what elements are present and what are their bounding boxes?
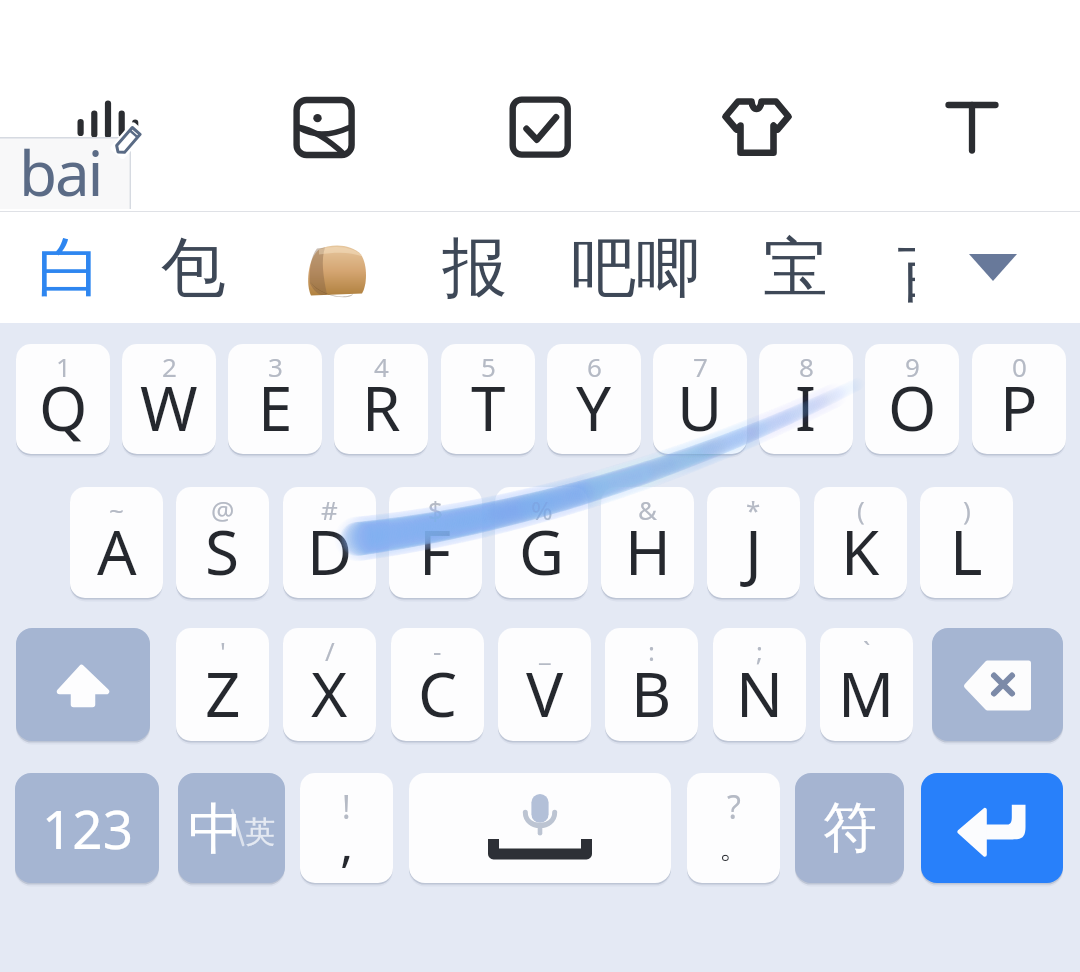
button[interactable]: _ xyxy=(498,628,591,741)
button[interactable]: ( xyxy=(814,487,907,598)
staticText: 宝 xyxy=(763,227,828,309)
staticText: T xyxy=(471,365,506,449)
staticText: Y xyxy=(576,365,612,449)
staticText: M xyxy=(838,651,895,735)
staticText: 包 xyxy=(161,227,226,309)
staticText: * xyxy=(746,492,761,527)
button[interactable]: 吧唧 xyxy=(551,213,721,322)
button[interactable]: 4 xyxy=(334,344,428,454)
staticText: U xyxy=(677,365,723,449)
button[interactable]: 0 xyxy=(972,344,1066,454)
button[interactable]: ' xyxy=(176,628,269,741)
staticText: Q xyxy=(39,365,88,449)
button[interactable]: # xyxy=(283,487,376,598)
staticText: ` xyxy=(863,633,871,668)
staticText: H xyxy=(625,509,671,593)
staticText: N xyxy=(736,651,784,735)
button[interactable]: 9 xyxy=(865,344,959,454)
staticText: Z xyxy=(205,651,241,735)
staticText: L xyxy=(950,509,983,593)
staticText: B xyxy=(631,651,672,735)
staticText: ~ xyxy=(109,492,124,527)
button[interactable]: 3 xyxy=(228,344,322,454)
staticText: ( xyxy=(857,492,865,527)
staticText: 6 xyxy=(587,349,602,384)
button[interactable]: - xyxy=(391,628,484,741)
staticText: 报 xyxy=(442,227,507,309)
button[interactable]: 白 xyxy=(17,213,121,322)
button[interactable]: % xyxy=(495,487,588,598)
button[interactable]: 2 xyxy=(122,344,216,454)
button[interactable]: 7 xyxy=(653,344,747,454)
button[interactable]: / xyxy=(283,628,376,741)
staticText: P xyxy=(1000,365,1038,449)
staticText: I xyxy=(795,365,817,449)
staticText: D xyxy=(307,509,353,593)
button[interactable]: $ xyxy=(389,487,482,598)
button[interactable]: Shift xyxy=(16,628,150,741)
button[interactable]: ` xyxy=(820,628,913,741)
staticText: 3 xyxy=(268,349,283,384)
staticText: 白 xyxy=(37,227,102,309)
button[interactable]: 1 xyxy=(16,344,110,454)
staticText: $ xyxy=(428,492,443,527)
staticText: O xyxy=(888,365,937,449)
button[interactable]: 符 xyxy=(795,773,904,883)
staticText: 7 xyxy=(693,349,708,384)
button[interactable]: 中 xyxy=(178,773,285,883)
button[interactable]: ~ xyxy=(70,487,163,598)
button[interactable]: Backspace xyxy=(932,628,1063,741)
button[interactable]: 5 xyxy=(441,344,535,454)
button[interactable]: 宝 xyxy=(743,213,847,322)
staticText: : xyxy=(648,633,655,668)
staticText: 0 xyxy=(1012,349,1027,384)
staticText: 9 xyxy=(905,349,920,384)
staticText: % xyxy=(531,492,553,527)
staticText: , xyxy=(340,809,354,877)
staticText: V xyxy=(526,651,564,735)
staticText: # xyxy=(321,492,338,527)
button[interactable]: * xyxy=(707,487,800,598)
staticText: ' xyxy=(220,633,226,668)
button[interactable]: & xyxy=(601,487,694,598)
button[interactable]: Emoji candidate xyxy=(280,213,392,322)
staticText: ? xyxy=(727,785,741,829)
staticText: R xyxy=(362,365,401,449)
staticText: _ xyxy=(539,633,551,668)
staticText: @ xyxy=(211,492,235,527)
staticText: G xyxy=(519,509,565,593)
button[interactable]: 包 xyxy=(141,213,245,322)
button[interactable]: 百 xyxy=(898,213,915,322)
button[interactable]: Space xyxy=(409,773,671,883)
staticText: 2 xyxy=(162,349,177,384)
button[interactable]: 报 xyxy=(422,213,526,322)
staticText: 5 xyxy=(481,349,496,384)
staticText: A xyxy=(97,509,137,593)
button[interactable]: @ xyxy=(176,487,269,598)
button[interactable]: Select xyxy=(480,67,600,187)
staticText: X xyxy=(311,651,348,735)
button[interactable]: : xyxy=(605,628,698,741)
button[interactable]: ) xyxy=(920,487,1013,598)
button[interactable]: Handwriting xyxy=(48,60,168,180)
button[interactable]: ! xyxy=(300,773,393,883)
button[interactable]: Enter xyxy=(921,773,1063,883)
staticText: E xyxy=(258,365,293,449)
staticText: 4 xyxy=(374,349,389,384)
staticText: & xyxy=(638,492,658,527)
staticText: 英 xyxy=(245,813,275,851)
staticText: ! xyxy=(342,785,351,829)
staticText: K xyxy=(841,509,880,593)
staticText: ; xyxy=(756,633,763,668)
staticText: 吧唧 xyxy=(571,227,701,309)
button[interactable]: ? xyxy=(687,773,780,883)
button[interactable]: 6 xyxy=(547,344,641,454)
button[interactable]: 8 xyxy=(759,344,853,454)
button[interactable]: Text style xyxy=(912,68,1032,188)
button[interactable]: More candidates xyxy=(940,213,1050,322)
button[interactable]: ; xyxy=(713,628,806,741)
button[interactable]: 123 xyxy=(15,773,159,883)
staticText: 8 xyxy=(799,349,814,384)
button[interactable]: Theme xyxy=(696,67,816,187)
button[interactable]: Stickers xyxy=(264,67,384,187)
